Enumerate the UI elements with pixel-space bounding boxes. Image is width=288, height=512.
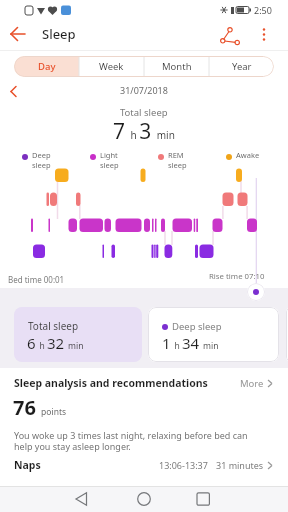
button[interactable] bbox=[192, 486, 288, 512]
staticText: 31/07/2018 bbox=[120, 84, 168, 96]
staticText: 13:06-13:37 bbox=[159, 459, 208, 471]
button[interactable]: Day bbox=[14, 56, 79, 77]
staticText: Deep bbox=[32, 150, 51, 160]
staticText: sleep bbox=[100, 160, 119, 170]
staticText: Naps bbox=[14, 458, 41, 472]
staticText: Month bbox=[162, 60, 192, 73]
staticText: 2:50 bbox=[254, 4, 272, 16]
button[interactable]: Sleep analysis and recommendations bbox=[14, 376, 274, 390]
button[interactable] bbox=[96, 486, 192, 512]
button[interactable]: Total sleep bbox=[14, 307, 142, 362]
staticText: Total sleep bbox=[28, 319, 79, 333]
staticText: More bbox=[240, 377, 264, 390]
staticText: Total sleep bbox=[120, 106, 168, 119]
staticText: 6 h 32 min bbox=[27, 333, 84, 353]
staticText: Bed time 00:01 bbox=[8, 274, 65, 285]
staticText: sleep bbox=[32, 160, 51, 170]
staticText: REM bbox=[168, 150, 184, 160]
button[interactable]: Week bbox=[79, 56, 144, 77]
button[interactable] bbox=[0, 486, 96, 512]
staticText: 31 minutes bbox=[216, 459, 264, 471]
button[interactable]: Naps bbox=[14, 456, 274, 474]
staticText: Week bbox=[99, 60, 124, 73]
staticText: Light bbox=[100, 150, 118, 160]
button[interactable] bbox=[252, 20, 280, 48]
staticText: Day bbox=[38, 60, 56, 73]
staticText: 7 h 3 min bbox=[113, 117, 175, 146]
staticText: 76 points bbox=[13, 394, 67, 421]
button[interactable]: Year bbox=[209, 56, 274, 77]
staticText: Sleep analysis and recommendations bbox=[14, 376, 208, 390]
staticText: Sleep bbox=[42, 25, 76, 43]
button[interactable] bbox=[6, 22, 30, 46]
button[interactable]: Deep sleep bbox=[148, 307, 279, 362]
button[interactable] bbox=[247, 283, 265, 301]
button[interactable] bbox=[6, 84, 22, 100]
staticText: Year bbox=[232, 60, 252, 73]
button[interactable] bbox=[214, 20, 242, 48]
staticText: Awake bbox=[236, 150, 260, 160]
staticText: Deep sleep bbox=[172, 320, 222, 333]
staticText: 1 h 34 min bbox=[162, 333, 219, 353]
staticText: Rise time 07:10 bbox=[209, 271, 265, 282]
staticText: You woke up 3 times last night, relaxing… bbox=[14, 429, 248, 452]
button[interactable]: Month bbox=[144, 56, 209, 77]
staticText: sleep bbox=[168, 160, 187, 170]
